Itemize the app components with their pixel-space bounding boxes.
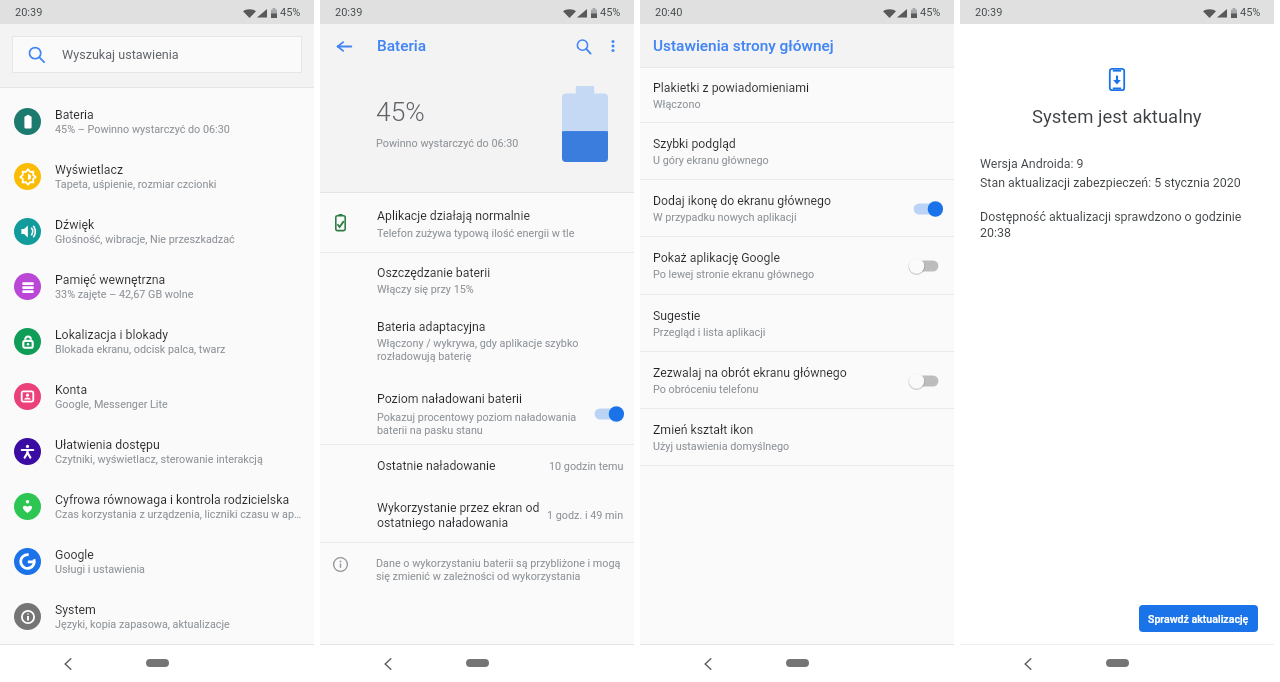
- staticText: Stan aktualizacji zabezpieczeń: 5 styczn…: [980, 175, 1241, 190]
- button[interactable]: Toggle off: [909, 253, 943, 279]
- button[interactable]: Toggle on: [909, 196, 943, 222]
- staticText: Blokada ekranu, odcisk palca, twarz: [55, 343, 226, 356]
- button[interactable]: Bateria: [0, 94, 314, 149]
- button[interactable]: Ostatnie naładowanie: [320, 445, 634, 493]
- button[interactable]: Sprawdź aktualizację: [1139, 605, 1258, 632]
- button[interactable]: Zezwalaj na obrót ekranu głównego: [640, 352, 954, 409]
- staticText: System: [55, 603, 96, 617]
- staticText: Włączy się przy 15%: [377, 283, 474, 296]
- button[interactable]: Cyfrowa równowaga i kontrola rodzicielsk…: [0, 479, 314, 534]
- staticText: 45%: [280, 6, 301, 19]
- button[interactable]: Back: [331, 33, 357, 59]
- button[interactable]: Szybki podgląd: [640, 123, 954, 180]
- button[interactable]: Sugestie: [640, 295, 954, 352]
- staticText: Szybki podgląd: [653, 137, 736, 151]
- staticText: Po obróceniu telefonu: [653, 383, 759, 396]
- staticText: Telefon zużywa typową ilość energii w tl…: [377, 227, 575, 240]
- staticText: Poziom naładowani baterii: [377, 392, 523, 406]
- button[interactable]: Konta: [0, 369, 314, 424]
- staticText: 45%: [376, 97, 425, 128]
- staticText: Zezwalaj na obrót ekranu głównego: [653, 366, 847, 380]
- staticText: Google, Messenger Lite: [55, 398, 168, 411]
- staticText: Zmień kształt ikon: [653, 423, 754, 437]
- button[interactable]: Wyświetlacz: [0, 149, 314, 204]
- staticText: Plakietki z powiadomieniami: [653, 81, 809, 95]
- staticText: Czytniki, wyświetlacz, sterowanie intera…: [55, 453, 263, 466]
- staticText: Konta: [55, 383, 88, 397]
- staticText: Powinno wystarczyć do 06:30: [376, 137, 519, 150]
- staticText: Bateria: [55, 108, 94, 122]
- staticText: 10 godzin temu: [549, 460, 624, 473]
- staticText: Wyszukaj ustawienia: [62, 47, 179, 62]
- button[interactable]: Poziom naładowani baterii: [320, 377, 634, 444]
- staticText: Pokazuj procentowy poziom naładowania ba…: [377, 411, 577, 437]
- staticText: U góry ekranu głównego: [653, 154, 769, 167]
- staticText: 20:39: [975, 6, 1003, 19]
- button[interactable]: Back: [1016, 652, 1040, 676]
- staticText: Dodaj ikonę do ekranu głównego: [653, 194, 831, 208]
- button[interactable]: Pamięć wewnętrzna: [0, 259, 314, 314]
- button[interactable]: Wyszukaj ustawienia: [12, 36, 302, 73]
- staticText: Google: [55, 548, 94, 562]
- staticText: 33% zajęte – 42,67 GB wolne: [55, 288, 194, 301]
- staticText: Aplikacje działają normalnie: [377, 209, 530, 223]
- button[interactable]: Home: [146, 659, 169, 667]
- staticText: Języki, kopia zapasowa, aktualizacje: [55, 618, 230, 631]
- staticText: Wykorzystanie przez ekran od ostatniego …: [377, 501, 540, 530]
- staticText: Głośność, wibracje, Nie przeszkadzać: [55, 233, 235, 246]
- button[interactable]: Pokaż aplikację Google: [640, 237, 954, 295]
- button[interactable]: Search: [570, 33, 596, 59]
- staticText: Wyświetlacz: [55, 163, 124, 177]
- staticText: Oszczędzanie baterii: [377, 266, 491, 280]
- button[interactable]: Home: [786, 659, 809, 667]
- button[interactable]: Plakietki z powiadomieniami: [640, 68, 954, 123]
- button[interactable]: Lokalizacja i blokady: [0, 314, 314, 369]
- button[interactable]: Google: [0, 534, 314, 589]
- staticText: Włączono: [653, 98, 701, 111]
- button[interactable]: Zmień kształt ikon: [640, 409, 954, 466]
- staticText: 20:39: [335, 6, 363, 19]
- button[interactable]: Toggle on: [590, 401, 624, 427]
- button[interactable]: Back: [56, 652, 80, 676]
- staticText: System jest aktualny: [1032, 106, 1202, 128]
- staticText: Dostępność aktualizacji sprawdzono o god…: [980, 209, 1242, 240]
- button[interactable]: Back: [376, 652, 400, 676]
- staticText: Sugestie: [653, 309, 701, 323]
- button[interactable]: Oszczędzanie baterii: [320, 253, 634, 312]
- staticText: 20:40: [655, 6, 683, 19]
- button[interactable]: Dodaj ikonę do ekranu głównego: [640, 180, 954, 237]
- staticText: Po lewej stronie ekranu głównego: [653, 268, 815, 281]
- staticText: Bateria: [377, 37, 427, 55]
- button[interactable]: Home: [466, 659, 489, 667]
- staticText: 45% – Powinno wystarczyć do 06:30: [55, 123, 230, 136]
- button[interactable]: More options: [600, 33, 626, 59]
- staticText: Ustawienia strony głównej: [653, 37, 834, 55]
- staticText: Włączony / wykrywa, gdy aplikacje szybko…: [377, 337, 579, 363]
- staticText: Ułatwienia dostępu: [55, 438, 160, 452]
- staticText: Czas korzystania z urządzenia, liczniki …: [55, 508, 302, 521]
- button[interactable]: Dźwięk: [0, 204, 314, 259]
- staticText: 45%: [600, 6, 621, 19]
- button[interactable]: Home: [1106, 659, 1129, 667]
- staticText: Dane o wykorzystaniu baterii są przybliż…: [376, 557, 621, 583]
- staticText: Cyfrowa równowaga i kontrola rodzicielsk…: [55, 493, 290, 507]
- staticText: Usługi i ustawienia: [55, 563, 145, 576]
- button[interactable]: Toggle off: [909, 368, 943, 394]
- button[interactable]: System: [0, 589, 314, 644]
- button[interactable]: Back: [696, 652, 720, 676]
- staticText: Pokaż aplikację Google: [653, 251, 781, 265]
- staticText: W przypadku nowych aplikacji: [653, 211, 797, 224]
- staticText: Ostatnie naładowanie: [377, 459, 549, 473]
- staticText: 20:39: [15, 6, 43, 19]
- button[interactable]: Ułatwienia dostępu: [0, 424, 314, 479]
- staticText: Użyj ustawienia domyślnego: [653, 440, 790, 453]
- staticText: Tapeta, uśpienie, rozmiar czcionki: [55, 178, 217, 191]
- button[interactable]: Aplikacje działają normalnie: [320, 193, 634, 252]
- button[interactable]: Bateria adaptacyjna: [320, 312, 634, 377]
- staticText: Sprawdź aktualizację: [1148, 613, 1249, 625]
- button[interactable]: Wykorzystanie przez ekran od ostatniego …: [320, 493, 634, 542]
- staticText: Bateria adaptacyjna: [377, 320, 486, 334]
- staticText: Lokalizacja i blokady: [55, 328, 169, 342]
- staticText: 1 godz. i 49 min: [547, 509, 624, 522]
- staticText: Dźwięk: [55, 218, 95, 232]
